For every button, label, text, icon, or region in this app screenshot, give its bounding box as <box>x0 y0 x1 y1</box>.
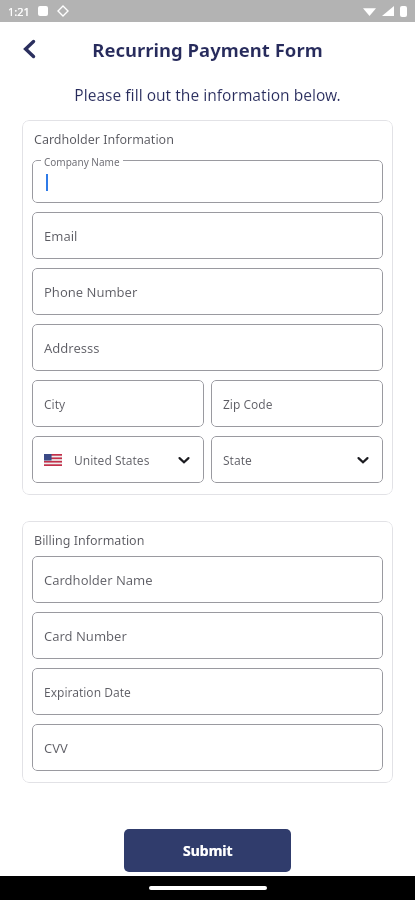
staticText: Expiration Date <box>44 684 131 700</box>
staticText: City <box>44 396 66 412</box>
staticText: CVV <box>44 739 68 757</box>
staticText: Please fill out the information below. <box>74 84 341 105</box>
button[interactable]: Expiration Date <box>32 668 383 715</box>
staticText: State <box>223 452 252 468</box>
staticText: United States <box>74 452 150 468</box>
staticText: Company Name <box>44 155 120 169</box>
button[interactable]: Zip Code <box>211 380 383 427</box>
button[interactable]: CVV <box>32 724 383 771</box>
staticText: 1:21 <box>8 4 30 19</box>
button[interactable]: Phone Number <box>32 268 383 315</box>
staticText: Phone Number <box>44 283 138 301</box>
staticText: Submit <box>183 841 233 860</box>
button[interactable]: Email <box>32 212 383 259</box>
staticText: Email <box>44 227 78 245</box>
button[interactable]: Cardholder Name <box>32 556 383 603</box>
staticText: Cardholder Information <box>34 131 174 148</box>
staticText: Zip Code <box>223 396 273 412</box>
staticText: Recurring Payment Form <box>92 37 323 62</box>
button[interactable]: Back <box>8 27 52 71</box>
button[interactable]: Addresss <box>32 324 383 371</box>
button[interactable]: Card Number <box>32 612 383 659</box>
staticText: Billing Information <box>34 532 145 549</box>
staticText: Cardholder Name <box>44 571 153 589</box>
button[interactable]: City <box>32 380 204 427</box>
button[interactable]: State <box>211 436 383 483</box>
staticText: Addresss <box>44 339 100 357</box>
staticText: Card Number <box>44 627 127 645</box>
button[interactable]: Company Name <box>32 155 383 203</box>
button[interactable]: United States <box>32 436 204 483</box>
button[interactable]: Submit <box>124 829 291 872</box>
